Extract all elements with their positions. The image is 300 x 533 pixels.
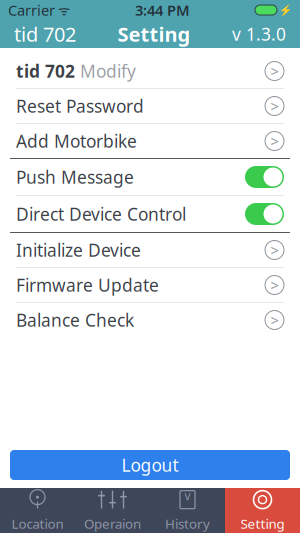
staticText: Balance Check [16,308,134,331]
staticText: Setting [117,21,190,47]
staticText: > [270,131,278,151]
staticText: Operaion [84,515,141,532]
staticText: > [270,275,278,295]
button[interactable]: Initialize Device [0,233,300,267]
button[interactable]: Location [0,488,75,533]
staticText: v 1.3.0 [232,22,286,45]
staticText: v [184,488,190,504]
button[interactable]: tid 702 [14,21,76,47]
staticText: Initialize Device [16,238,141,261]
staticText: > [270,310,278,330]
staticText: Firmware Update [16,273,159,296]
staticText: Modify [75,59,136,82]
staticText: tid 702 [14,21,76,47]
staticText: > [270,240,278,260]
staticText: > [270,61,278,81]
staticText: Logout [121,453,178,476]
button[interactable]: Push Message [0,159,300,195]
staticText: > [270,96,278,116]
staticText: Carrier [8,0,55,20]
staticText: Push Message [16,165,134,188]
button[interactable]: Logout [10,450,290,480]
button[interactable]: tid 702 [0,54,300,88]
staticText: History [165,515,210,532]
staticText: 3:44 PM [135,0,190,20]
button[interactable]: v [150,488,225,533]
staticText: Setting [240,515,284,532]
button[interactable]: Direct Device Control [0,196,300,232]
staticText: Reset Password [16,94,144,117]
button[interactable]: Balance Check [0,303,300,337]
staticText: ᯤ [55,1,70,19]
staticText: ⚡ [279,4,292,16]
staticText: Location [11,515,63,532]
button[interactable]: Add Motorbike [0,124,300,158]
button[interactable]: Firmware Update [0,268,300,302]
button[interactable]: Operaion [75,488,150,533]
staticText: Add Motorbike [16,129,137,152]
button[interactable]: Reset Password [0,89,300,123]
staticText: Direct Device Control [16,202,186,225]
staticText: tid 702 [16,59,75,82]
button[interactable]: Setting [225,488,300,533]
